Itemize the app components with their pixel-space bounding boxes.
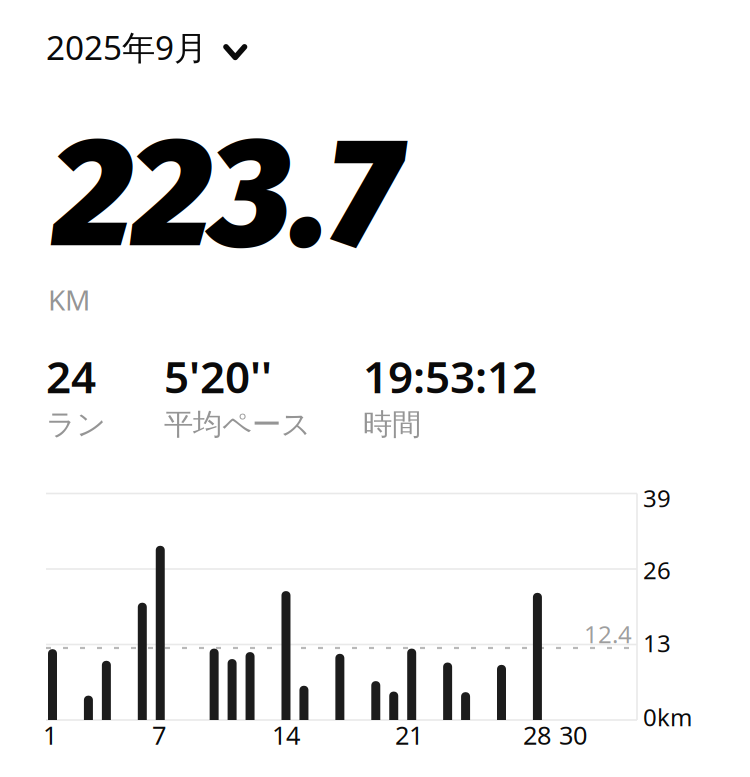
staticText: 13 [643,627,671,659]
staticText: 21 [395,718,423,752]
staticText: KM [48,281,90,318]
staticText: 39 [643,482,671,514]
staticText: ラン [46,406,106,442]
staticText: 7 [152,718,166,752]
staticText: 19:53:12 [363,347,537,405]
staticText: 5'20'' [164,347,272,405]
staticText: 12.4 [584,618,632,650]
staticText: 1 [43,718,57,752]
staticText: 平均ペース [164,406,311,442]
staticText: 14 [272,718,300,752]
staticText: 時間 [363,406,421,442]
staticText: 223.7 [53,102,400,286]
staticText: 26 [643,554,671,586]
staticText: 2025年9月 [46,25,207,69]
staticText: 30 [559,718,587,752]
staticText: 28 [523,718,551,752]
staticText: 24 [46,347,96,405]
button[interactable]: 2025年9月 [46,19,250,75]
staticText: 0km [643,701,692,733]
